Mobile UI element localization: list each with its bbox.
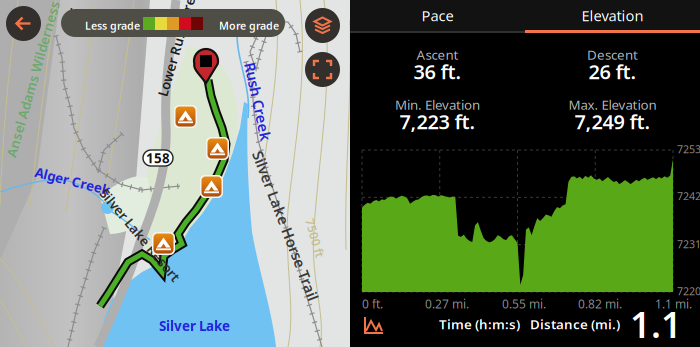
staticText: Silver Lake Horse Trail [206,216,365,235]
staticText: Pace [421,6,453,25]
staticText: Alger Creek [34,172,111,190]
button[interactable]: Map layers [305,8,340,43]
staticText: 7,223 ft. [399,108,475,135]
staticText: Par [60,10,82,28]
button[interactable]: Elevation [525,0,700,31]
staticText: 26 ft. [588,58,636,85]
staticText: 0.27 mi. [425,296,469,312]
staticText: 7253 [677,142,700,156]
staticText: 1.1 [630,300,682,347]
staticText: Ansel Adams Wilderness [0,70,114,88]
button[interactable]: Full screen [305,52,340,87]
staticText: Elevation [581,6,643,25]
staticText: Descent [587,46,638,63]
staticText: 7231 [677,237,700,251]
staticText: Distance (mi.) [530,315,620,333]
button[interactable]: Back [6,6,41,41]
staticText: Silver Lake [159,317,230,335]
staticText: 0 ft. [362,296,383,312]
staticText: 7220 [677,284,700,298]
staticText: More grade [219,18,279,33]
staticText: 7500 ft [295,230,335,246]
staticText: Rush Creek [218,92,298,111]
staticText: 1.1 mi. [655,296,692,312]
staticText: Min. Elevation [395,96,480,113]
staticText: 0.55 mi. [502,296,546,312]
staticText: Less grade [85,18,140,33]
staticText: Silver Lake Resort [82,226,198,244]
staticText: 158 [146,149,170,167]
staticText: Ascent [416,46,458,63]
button[interactable]: Pace [350,0,525,31]
staticText: 0.82 mi. [578,296,622,312]
staticText: Time (h:m:s) [439,315,520,333]
button[interactable]: Chart type [359,311,390,340]
staticText: 7242 [677,189,700,203]
staticText: Lower Rush Creek [119,30,238,48]
staticText: 36 ft. [413,58,461,85]
staticText: Max. Elevation [568,96,656,113]
staticText: 7,249 ft. [574,108,650,135]
